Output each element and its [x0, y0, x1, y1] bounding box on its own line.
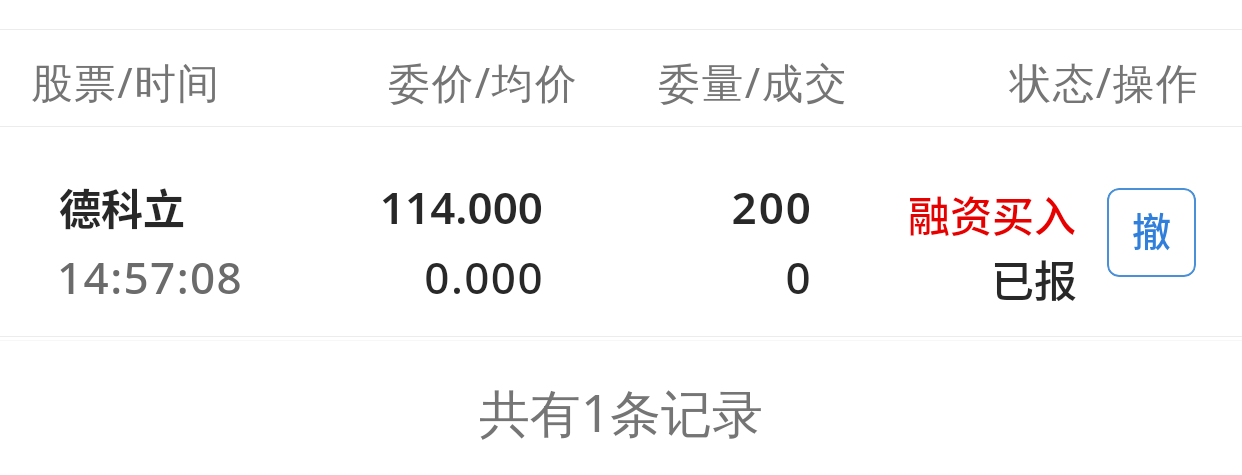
button[interactable]: 撤单 [1107, 188, 1196, 277]
staticText: 股票/时间 [31, 54, 221, 111]
staticText: 委价/均价 [0, 54, 578, 111]
staticText: 共有1条记录 [0, 377, 1242, 447]
staticText: 0.000 [0, 247, 544, 307]
staticText: 委量/成交 [0, 54, 848, 111]
staticText: 已报 [0, 247, 1077, 309]
staticText: 撤 [1132, 201, 1172, 257]
staticText: 状态/操作 [0, 54, 1199, 111]
staticText: 德科立 [59, 176, 186, 237]
staticText: 114.000 [0, 177, 543, 237]
staticText: 融资买入 [0, 183, 1076, 244]
staticText: 14:57:08 [57, 247, 244, 307]
staticText: 0 [0, 247, 812, 307]
staticText: 200 [0, 177, 813, 237]
button[interactable]: 德科立 [0, 127, 1242, 336]
